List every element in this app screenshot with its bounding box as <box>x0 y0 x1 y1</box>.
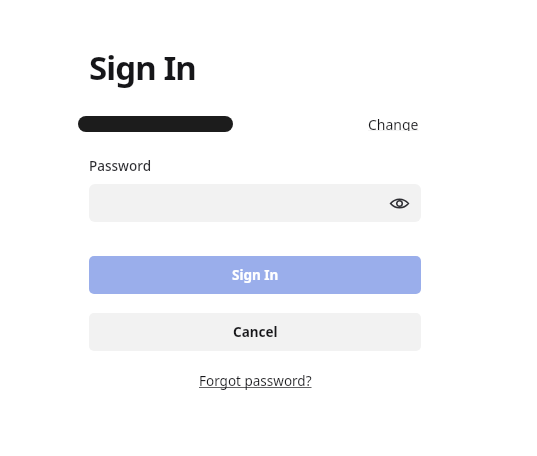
staticText: Sign In <box>89 45 196 90</box>
button[interactable]: Forgot password? <box>195 367 316 395</box>
staticText: Password <box>89 157 152 175</box>
staticText: Forgot password? <box>199 372 312 390</box>
button[interactable]: Show password <box>386 190 412 216</box>
button[interactable]: Show password <box>89 184 421 222</box>
staticText: Cancel <box>233 323 278 341</box>
staticText: Change <box>368 115 419 131</box>
button[interactable]: Change <box>366 112 421 134</box>
staticText: Sign In <box>232 266 279 284</box>
button[interactable]: Cancel <box>89 313 421 351</box>
button[interactable]: Sign In <box>89 256 421 294</box>
